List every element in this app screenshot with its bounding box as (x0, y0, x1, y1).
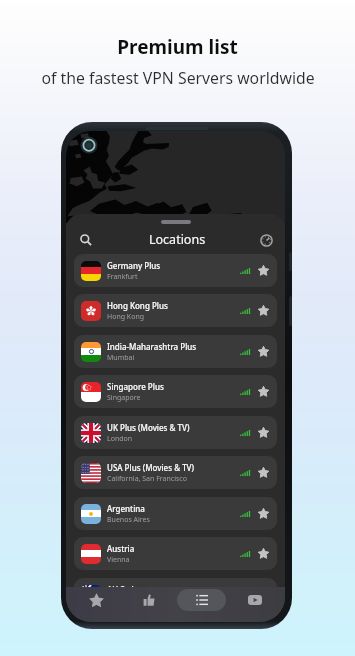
button[interactable]: Austria (74, 537, 277, 570)
button[interactable]: Singapore Plus (74, 375, 277, 408)
staticText: California, San Francisco (107, 474, 187, 484)
button[interactable]: Speed test (256, 230, 276, 250)
staticText: Frankfurt (107, 272, 138, 282)
staticText: London (107, 434, 133, 444)
button[interactable]: USA Plus (Movies & TV) (74, 456, 277, 489)
button[interactable]: India-Maharashtra Plus (74, 335, 277, 368)
staticText: UK Plus (Movies & TV) (107, 422, 190, 433)
button[interactable]: Search (76, 230, 96, 250)
button[interactable]: Argentina (74, 497, 277, 530)
staticText: India-Maharashtra Plus (107, 341, 197, 352)
button[interactable]: Streaming (228, 587, 281, 613)
staticText: Argentina (107, 503, 145, 514)
staticText: Hong Kong Plus (107, 300, 168, 311)
staticText: Singapore (107, 393, 141, 403)
button[interactable]: Hong Kong Plus (74, 294, 277, 327)
staticText: Locations (149, 231, 206, 248)
staticText: of the fastest VPN Servers worldwide (41, 67, 315, 89)
staticText: Singapore Plus (107, 381, 164, 392)
button[interactable]: Favorites (70, 587, 122, 613)
staticText: Vienna (107, 555, 130, 565)
staticText: Austria (107, 543, 135, 554)
staticText: Buenos Aires (107, 515, 150, 525)
staticText: Premium list (117, 34, 238, 60)
staticText: Mumbai (107, 353, 135, 363)
staticText: Germany Plus (107, 260, 161, 271)
button[interactable]: UK Plus (Movies & TV) (74, 416, 277, 449)
button[interactable]: AU Sydney (74, 578, 277, 611)
staticText: AU Sydney (107, 584, 148, 595)
button[interactable]: All locations (175, 587, 228, 613)
button[interactable]: Recommended (122, 587, 175, 613)
staticText: Hong Kong (107, 312, 145, 322)
button[interactable]: Germany Plus (74, 254, 277, 287)
staticText: USA Plus (Movies & TV) (107, 462, 195, 473)
